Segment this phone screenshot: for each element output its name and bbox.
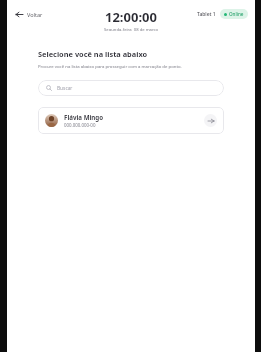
staticText: Selecione você na lista abaixo bbox=[38, 49, 148, 59]
staticText: Buscar bbox=[57, 85, 73, 92]
staticText: Tablet 1 bbox=[197, 11, 216, 18]
button[interactable]: Flávia Mingo bbox=[38, 107, 224, 134]
staticText: 12:00:00 bbox=[105, 8, 157, 26]
button[interactable]: Buscar bbox=[38, 80, 224, 96]
staticText: Voltar bbox=[27, 11, 43, 18]
staticText: Procure você na lista abaixo para prosse… bbox=[38, 63, 182, 69]
staticText: Online bbox=[229, 11, 244, 17]
staticText: Flávia Mingo bbox=[64, 113, 104, 121]
button[interactable]: Voltar bbox=[14, 9, 45, 20]
button[interactable]: Selecionar bbox=[204, 114, 217, 127]
staticText: 000.000.000-00 bbox=[64, 122, 96, 128]
staticText: Segunda-feira, 08 de março bbox=[104, 27, 159, 31]
button[interactable]: Online bbox=[220, 9, 248, 19]
